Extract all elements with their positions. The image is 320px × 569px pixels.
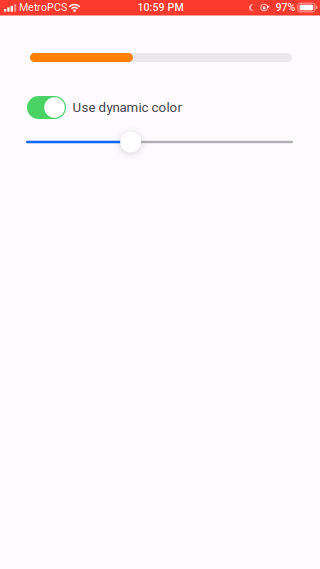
staticText: Use dynamic color — [72, 100, 182, 115]
staticText: MetroPCS — [19, 1, 67, 13]
button[interactable]: Use dynamic color — [0, 96, 320, 119]
staticText: 10:59 PM — [137, 1, 183, 13]
staticText: 97% — [275, 1, 295, 13]
